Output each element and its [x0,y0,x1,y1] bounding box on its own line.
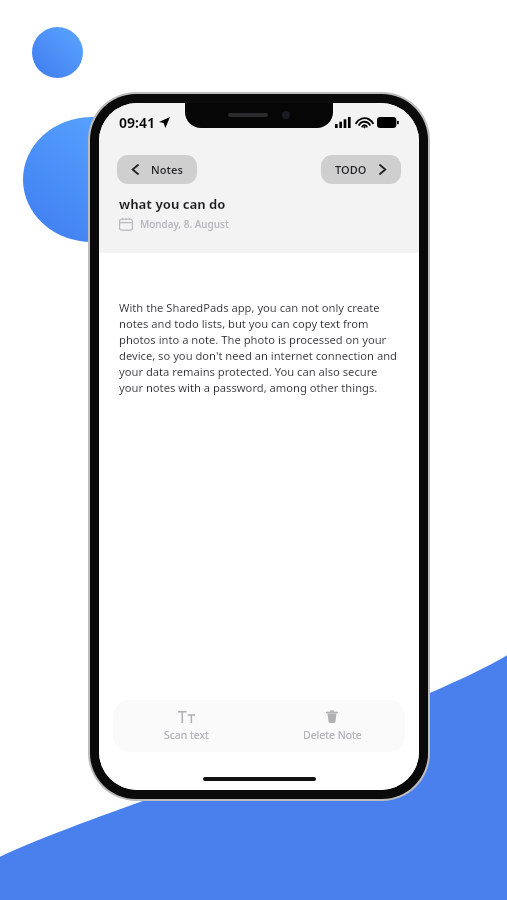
staticText: Monday, 8. August [140,217,229,231]
staticText: what you can do [119,195,226,213]
staticText: 09:41 [119,113,155,132]
button[interactable]: Delete Note [259,700,405,752]
staticText: With the SharedPads app, you can not onl… [119,300,403,395]
staticText: Notes [151,162,183,177]
staticText: Scan text [164,728,209,742]
staticText: TODO [335,162,367,177]
button[interactable]: Scan text [113,700,259,752]
staticText: Delete Note [303,728,362,742]
button[interactable]: Notes [117,155,197,184]
button[interactable]: TODO [321,155,401,184]
